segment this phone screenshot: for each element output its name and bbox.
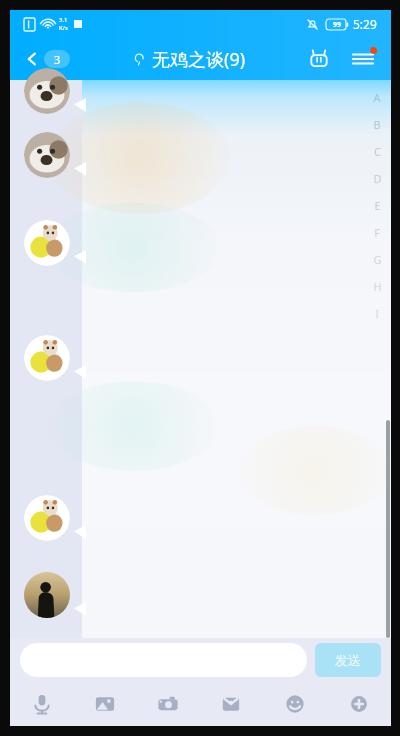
staticText: F	[374, 225, 380, 240]
button[interactable]: Avatar	[24, 335, 70, 381]
button[interactable]: Group	[303, 43, 335, 75]
button[interactable]: Menu	[349, 47, 377, 71]
button[interactable]: Message input	[20, 643, 307, 677]
button[interactable]: Avatar	[24, 495, 70, 541]
button[interactable]: Back	[18, 46, 76, 72]
button[interactable]: Gift	[199, 682, 263, 726]
staticText: E	[374, 198, 381, 213]
staticText: B	[373, 117, 381, 132]
staticText: 3	[54, 52, 61, 67]
staticText: D	[373, 171, 382, 186]
button[interactable]: Emoji	[263, 682, 327, 726]
staticText: H	[373, 279, 382, 294]
button[interactable]: Gallery	[73, 682, 136, 726]
staticText: 3.1	[59, 16, 68, 24]
button[interactable]: More	[327, 682, 391, 726]
staticText: 无鸡之谈(9)	[152, 47, 246, 72]
button[interactable]: Avatar	[24, 132, 70, 178]
staticText: 发送	[335, 652, 361, 668]
button[interactable]: Voice	[10, 682, 73, 726]
button[interactable]: Alphabet index	[369, 84, 385, 327]
staticText: K/s	[59, 24, 68, 32]
staticText: 99	[333, 20, 342, 30]
staticText: G	[373, 252, 382, 267]
button[interactable]: Avatar	[24, 220, 70, 266]
button[interactable]: Camera	[136, 682, 199, 726]
staticText: 5:29	[353, 16, 377, 32]
staticText: I	[375, 306, 379, 321]
staticText: C	[374, 144, 381, 159]
button[interactable]: Avatar	[24, 68, 70, 114]
button[interactable]: 发送	[315, 643, 381, 677]
button[interactable]: Avatar	[24, 572, 70, 618]
staticText: A	[373, 90, 381, 105]
